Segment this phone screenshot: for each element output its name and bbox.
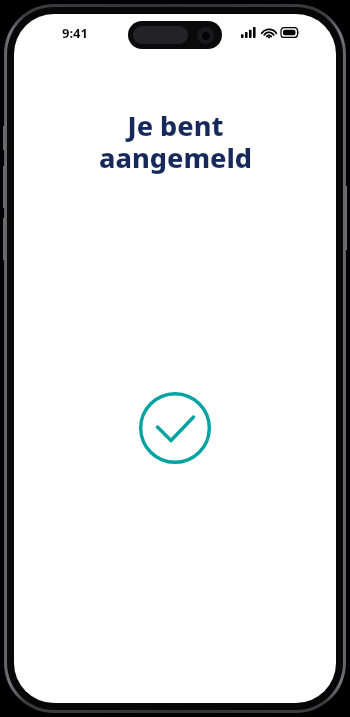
staticText: 9:41 bbox=[62, 24, 88, 42]
button[interactable]: Aangemeld bbox=[136, 389, 214, 467]
staticText: Je bent aangemeld bbox=[99, 107, 252, 176]
